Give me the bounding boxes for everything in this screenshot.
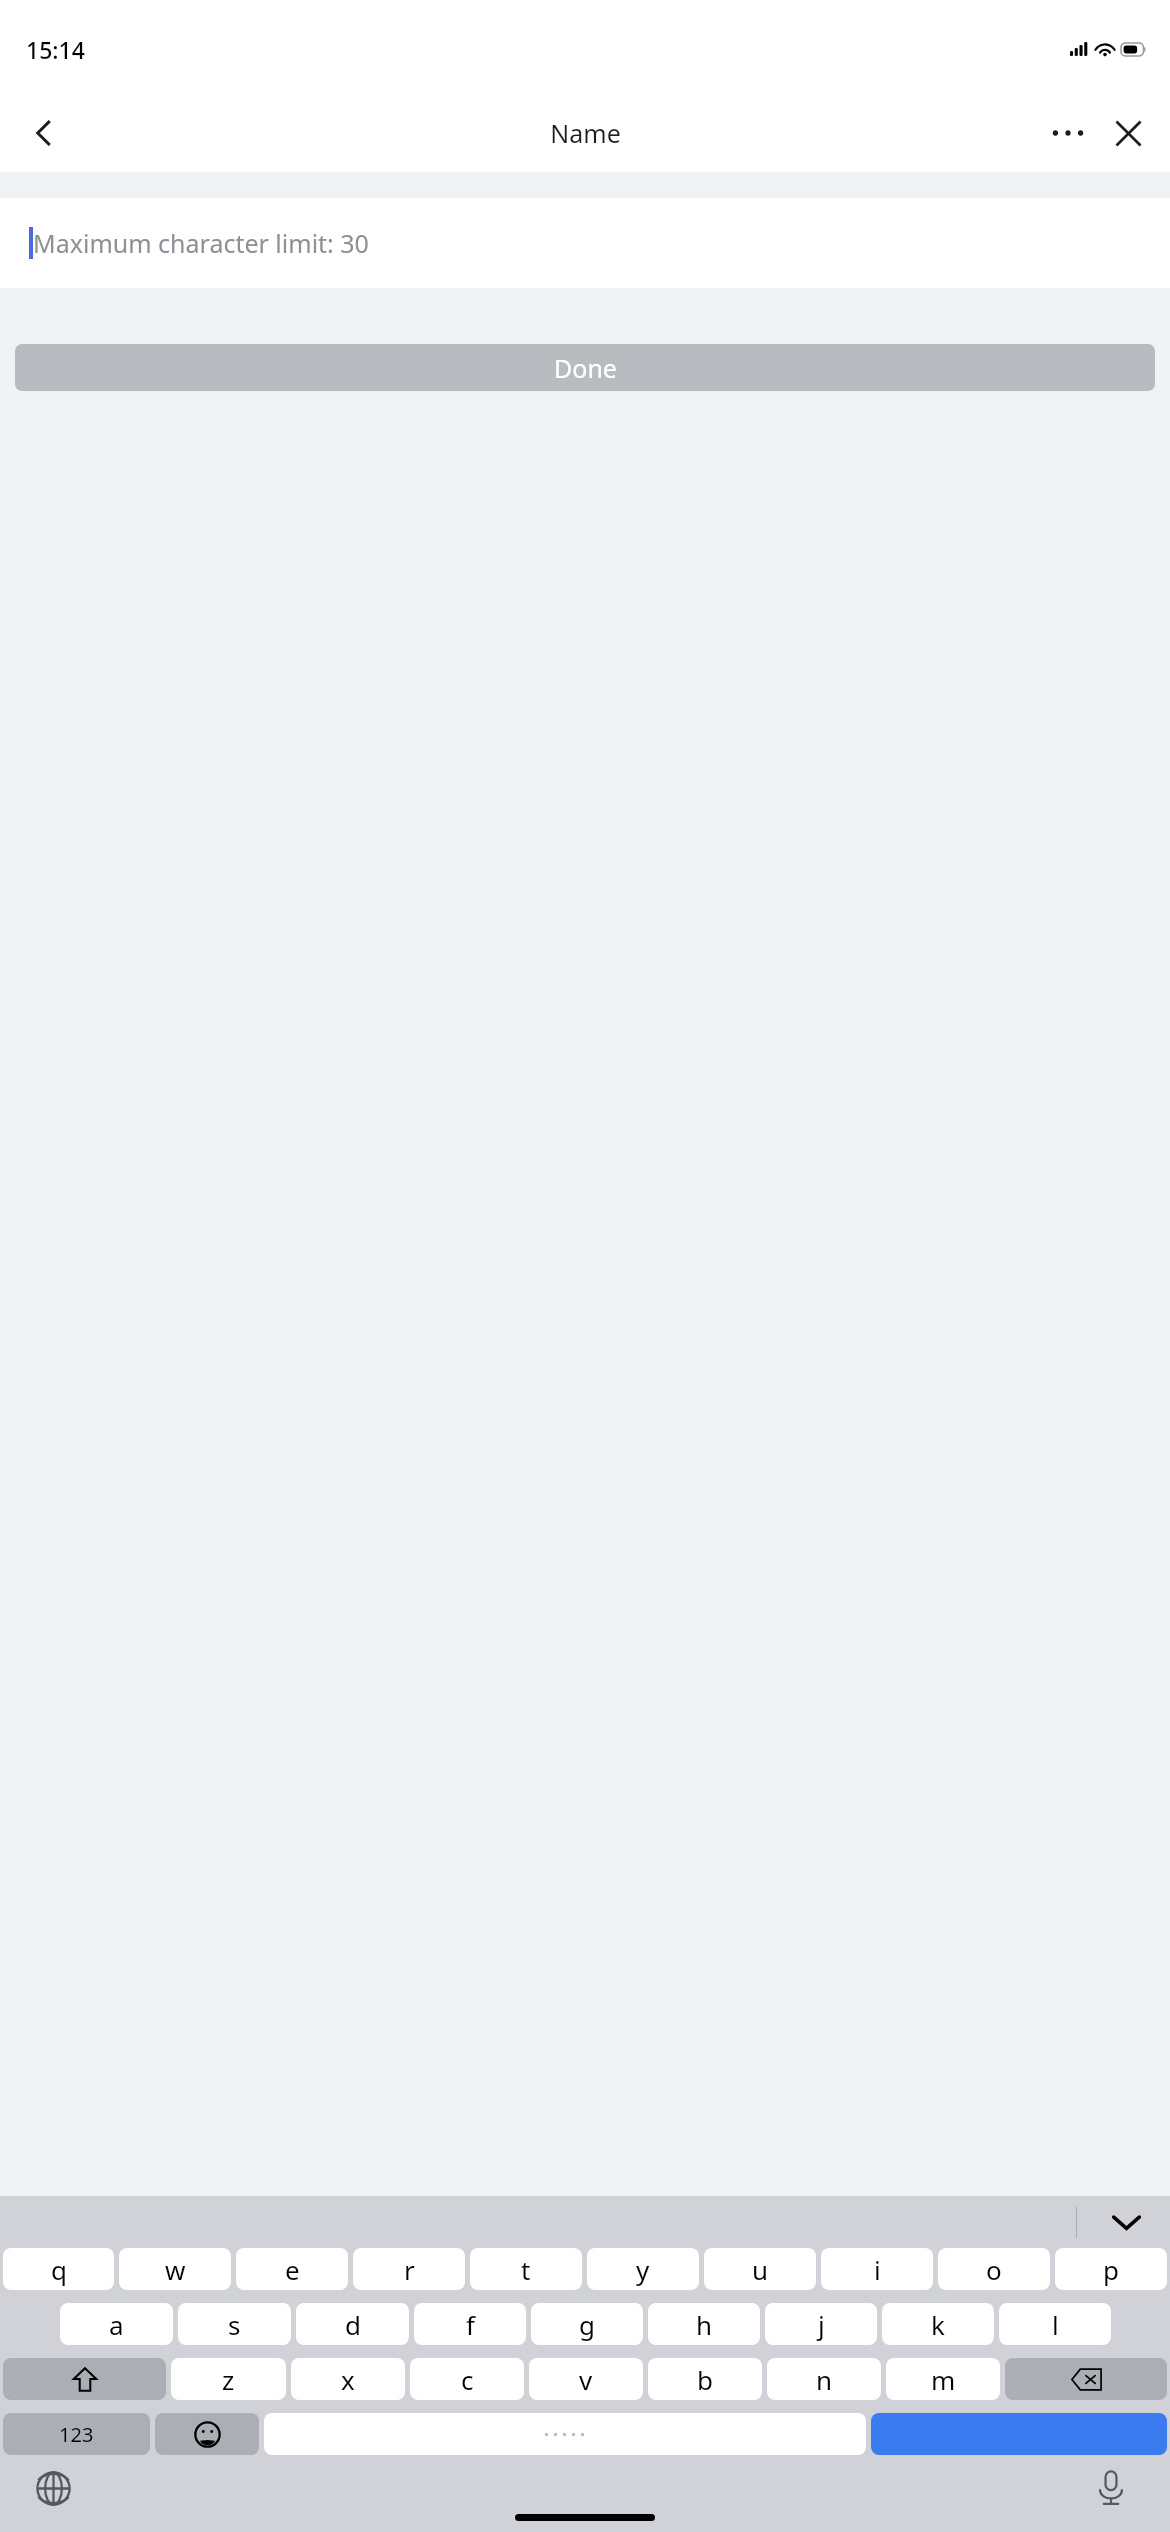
button[interactable]: k xyxy=(882,2303,994,2345)
staticText: h xyxy=(696,2307,713,2342)
staticText: c xyxy=(461,2362,474,2397)
staticText: m xyxy=(931,2362,956,2397)
button[interactable]: y xyxy=(587,2248,699,2290)
button[interactable]: l xyxy=(999,2303,1111,2345)
button[interactable]: Hide keyboard xyxy=(1096,2196,1156,2248)
staticText: b xyxy=(697,2362,713,2397)
button[interactable]: d xyxy=(296,2303,409,2345)
staticText: k xyxy=(931,2307,945,2342)
button[interactable]: Enter xyxy=(871,2413,1167,2455)
button[interactable]: Change keyboard language xyxy=(22,2457,84,2519)
button[interactable]: Space xyxy=(264,2413,866,2455)
button[interactable]: g xyxy=(531,2303,643,2345)
staticText: 123 xyxy=(59,2421,94,2448)
staticText: g xyxy=(579,2307,595,2342)
button[interactable]: Shift xyxy=(3,2358,166,2400)
button[interactable]: n xyxy=(767,2358,881,2400)
button[interactable]: u xyxy=(704,2248,816,2290)
staticText: r xyxy=(404,2252,415,2287)
button[interactable]: Back xyxy=(10,99,78,167)
staticText: n xyxy=(816,2362,833,2397)
button[interactable]: x xyxy=(291,2358,405,2400)
button[interactable]: Emoji xyxy=(155,2413,259,2455)
staticText: p xyxy=(1103,2252,1119,2287)
staticText: l xyxy=(1052,2307,1059,2342)
button[interactable]: 123 xyxy=(3,2413,150,2455)
staticText: Done xyxy=(554,351,617,385)
staticText: i xyxy=(874,2252,881,2287)
staticText: t xyxy=(521,2252,531,2287)
staticText: v xyxy=(579,2362,593,2397)
button[interactable]: j xyxy=(765,2303,877,2345)
staticText: q xyxy=(51,2252,67,2287)
button[interactable]: p xyxy=(1055,2248,1167,2290)
button[interactable]: f xyxy=(414,2303,526,2345)
button[interactable]: t xyxy=(470,2248,582,2290)
button[interactable]: s xyxy=(178,2303,291,2345)
button[interactable]: Close xyxy=(1094,99,1162,167)
button[interactable]: h xyxy=(648,2303,760,2345)
staticText: f xyxy=(466,2307,475,2342)
button[interactable]: i xyxy=(821,2248,933,2290)
staticText: 15:14 xyxy=(26,34,85,65)
button[interactable]: Maximum character limit: 30 xyxy=(0,198,1170,288)
staticText: e xyxy=(285,2252,300,2287)
button[interactable]: r xyxy=(353,2248,465,2290)
button[interactable]: q xyxy=(3,2248,114,2290)
staticText: s xyxy=(228,2307,241,2342)
staticText: o xyxy=(986,2252,1002,2287)
staticText: x xyxy=(341,2362,355,2397)
button[interactable]: z xyxy=(171,2358,286,2400)
button[interactable]: b xyxy=(648,2358,762,2400)
button[interactable]: v xyxy=(529,2358,643,2400)
staticText: d xyxy=(345,2307,361,2342)
button[interactable]: Voice input xyxy=(1080,2457,1142,2519)
staticText: Maximum character limit: 30 xyxy=(33,226,369,260)
button[interactable]: o xyxy=(938,2248,1050,2290)
staticText: w xyxy=(165,2252,186,2287)
button[interactable]: Done xyxy=(15,344,1155,391)
staticText: u xyxy=(752,2252,769,2287)
staticText: y xyxy=(636,2252,650,2287)
button[interactable]: e xyxy=(236,2248,348,2290)
button[interactable]: a xyxy=(60,2303,173,2345)
staticText: j xyxy=(818,2307,825,2342)
button[interactable]: Backspace xyxy=(1005,2358,1167,2400)
button[interactable]: m xyxy=(886,2358,1000,2400)
staticText: z xyxy=(222,2362,235,2397)
staticText: a xyxy=(109,2307,124,2342)
staticText: Name xyxy=(550,116,621,150)
button[interactable]: w xyxy=(119,2248,231,2290)
button[interactable]: More options xyxy=(1034,99,1102,167)
button[interactable]: c xyxy=(410,2358,524,2400)
